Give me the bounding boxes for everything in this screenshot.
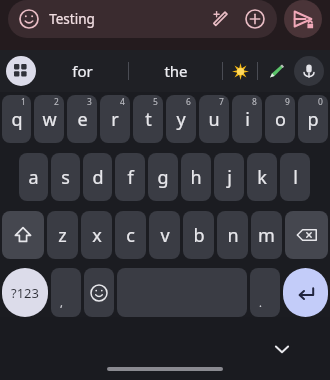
staticText: r xyxy=(111,107,119,132)
staticText: 9 xyxy=(285,96,290,108)
button[interactable]: . xyxy=(250,268,280,317)
button[interactable]: , xyxy=(51,268,81,317)
button[interactable]: 9 xyxy=(265,95,295,143)
button[interactable]: f xyxy=(115,153,145,201)
staticText: j xyxy=(227,165,232,190)
staticText: 6 xyxy=(186,96,191,108)
staticText: the xyxy=(164,61,188,81)
staticText: n xyxy=(227,223,239,248)
staticText: o xyxy=(275,107,286,132)
staticText: ?123 xyxy=(11,284,39,302)
button[interactable]: Space xyxy=(117,268,247,317)
button[interactable]: 1 xyxy=(2,95,31,143)
button[interactable]: Toolbar xyxy=(6,56,36,86)
button[interactable]: for xyxy=(36,50,128,92)
button[interactable]: Emoji xyxy=(18,8,40,30)
button[interactable]: Backspace xyxy=(285,211,328,259)
button[interactable]: c xyxy=(115,211,146,259)
staticText: p xyxy=(307,107,319,132)
button[interactable]: Shift xyxy=(2,211,44,259)
button[interactable]: Pen sticker xyxy=(258,50,292,92)
button[interactable]: h xyxy=(181,153,211,201)
button[interactable]: ?123 xyxy=(2,268,48,317)
button[interactable]: g xyxy=(148,153,178,201)
button[interactable]: Voice input xyxy=(294,56,324,86)
button[interactable]: Magic compose xyxy=(209,7,233,31)
button[interactable]: 8 xyxy=(232,95,262,143)
staticText: 4 xyxy=(120,96,125,108)
button[interactable]: Attach xyxy=(243,7,267,31)
staticText: k xyxy=(257,165,267,190)
staticText: 2 xyxy=(54,96,59,108)
staticText: 1 xyxy=(21,96,26,108)
button[interactable]: k xyxy=(247,153,277,201)
staticText: 3 xyxy=(87,96,92,108)
staticText: i xyxy=(245,107,250,132)
button[interactable]: x xyxy=(81,211,112,259)
staticText: e xyxy=(77,107,88,132)
button[interactable]: n xyxy=(217,211,248,259)
staticText: d xyxy=(92,165,104,190)
staticText: for xyxy=(72,61,93,81)
staticText: 8 xyxy=(252,96,257,108)
button[interactable]: 4 xyxy=(100,95,130,143)
staticText: s xyxy=(61,165,70,190)
staticText: t xyxy=(145,107,152,132)
staticText: . xyxy=(259,295,262,310)
button[interactable]: d xyxy=(83,153,112,201)
button[interactable]: 6 xyxy=(166,95,196,143)
staticText: w xyxy=(42,107,57,132)
button[interactable]: Emoji xyxy=(8,0,277,38)
staticText: a xyxy=(28,165,39,190)
button[interactable]: v xyxy=(149,211,180,259)
staticText: g xyxy=(157,165,169,190)
button[interactable]: b xyxy=(183,211,214,259)
button[interactable]: 0 xyxy=(298,95,328,143)
button[interactable]: z xyxy=(47,211,78,259)
staticText: f xyxy=(127,165,134,190)
staticText: u xyxy=(208,107,220,132)
button[interactable]: Hide keyboard xyxy=(268,335,296,363)
staticText: b xyxy=(193,223,205,248)
button[interactable]: 5 xyxy=(133,95,163,143)
button[interactable]: Send xyxy=(284,0,322,38)
staticText: 5 xyxy=(153,96,158,108)
button[interactable]: 2 xyxy=(34,95,64,143)
button[interactable]: m xyxy=(251,211,282,259)
button[interactable]: Sparkle sticker xyxy=(223,50,257,92)
button[interactable]: 7 xyxy=(199,95,229,143)
staticText: h xyxy=(190,165,202,190)
staticText: Testing xyxy=(49,10,95,28)
button[interactable]: Enter xyxy=(283,268,328,317)
staticText: x xyxy=(92,223,102,248)
staticText: z xyxy=(58,223,67,248)
staticText: 7 xyxy=(219,96,224,108)
button[interactable]: l xyxy=(280,153,310,201)
staticText: v xyxy=(160,223,170,248)
staticText: 0 xyxy=(318,96,323,108)
button[interactable]: s xyxy=(51,153,80,201)
staticText: , xyxy=(60,295,63,310)
button[interactable]: Emoji keyboard xyxy=(84,268,114,317)
button[interactable]: a xyxy=(19,153,48,201)
staticText: y xyxy=(176,107,186,132)
button[interactable]: the xyxy=(129,50,222,92)
staticText: q xyxy=(11,107,23,132)
staticText: c xyxy=(126,223,135,248)
staticText: m xyxy=(258,223,275,248)
button[interactable]: j xyxy=(214,153,244,201)
button[interactable]: 3 xyxy=(67,95,97,143)
staticText: l xyxy=(293,165,298,190)
